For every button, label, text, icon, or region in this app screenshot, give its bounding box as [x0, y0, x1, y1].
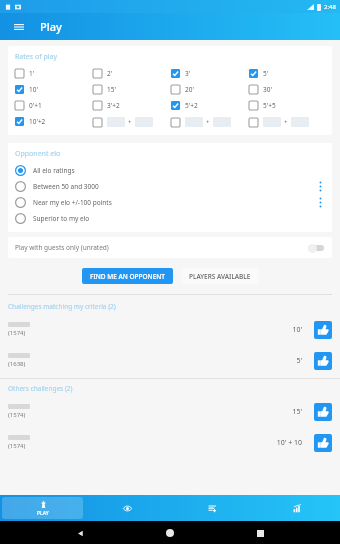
- button[interactable]: +: [249, 117, 327, 127]
- staticText: 5': [263, 69, 269, 78]
- staticText: PLAYERS AVAILABLE: [189, 272, 251, 281]
- button[interactable]: Accept challenge: [314, 434, 332, 452]
- staticText: All elo ratings: [33, 166, 327, 175]
- button[interactable]: 5'+5: [249, 99, 327, 112]
- staticText: 10' + 10: [252, 438, 302, 448]
- staticText: 1': [29, 69, 35, 78]
- staticText: 10': [29, 85, 38, 94]
- staticText: 30': [263, 85, 272, 94]
- button[interactable]: Play with guests only (unrated): [8, 237, 332, 258]
- button[interactable]: +: [93, 117, 171, 127]
- staticText: Challenges matching my criteria (2): [8, 302, 116, 311]
- button[interactable]: +: [171, 117, 249, 127]
- button[interactable]: 20': [171, 83, 249, 96]
- button[interactable]: 30': [249, 83, 327, 96]
- staticText: 0'+1: [29, 101, 42, 110]
- button[interactable]: Between 50 and 3000: [15, 178, 327, 194]
- button[interactable]: 15': [93, 83, 171, 96]
- button[interactable]: Statistics: [257, 497, 338, 519]
- button[interactable]: All elo ratings: [15, 162, 327, 178]
- staticText: Rates of play: [15, 52, 57, 62]
- staticText: Opponent elo: [15, 149, 61, 159]
- button[interactable]: (1574): [0, 314, 340, 345]
- staticText: 15': [107, 85, 116, 94]
- button[interactable]: 3': [171, 67, 249, 80]
- button[interactable]: PLAY: [2, 497, 83, 519]
- staticText: FIND ME AN OPPONENT: [90, 272, 165, 281]
- button[interactable]: 1': [15, 67, 93, 80]
- button[interactable]: (1574): [0, 427, 340, 458]
- staticText: Near my elo +/-100 points: [33, 198, 313, 207]
- staticText: +: [206, 118, 210, 126]
- staticText: 5'+2: [185, 101, 198, 110]
- staticText: 2:48: [324, 3, 336, 11]
- button[interactable]: 10'+2: [15, 115, 93, 128]
- staticText: (1574): [8, 442, 26, 450]
- button[interactable]: 5': [249, 67, 327, 80]
- staticText: Play with guests only (unrated): [15, 243, 308, 252]
- button[interactable]: More options: [313, 178, 327, 194]
- staticText: 10': [252, 325, 302, 335]
- button[interactable]: Recents: [250, 523, 270, 543]
- button[interactable]: FIND ME AN OPPONENT: [82, 268, 173, 284]
- staticText: PLAY: [37, 510, 49, 517]
- button[interactable]: Accept challenge: [314, 321, 332, 339]
- staticText: Play: [40, 19, 62, 34]
- button[interactable]: 5'+2: [171, 99, 249, 112]
- staticText: 15': [252, 407, 302, 417]
- staticText: 20': [185, 85, 194, 94]
- button[interactable]: More options: [313, 194, 327, 210]
- staticText: (1574): [8, 329, 26, 337]
- staticText: 10'+2: [29, 117, 46, 126]
- button[interactable]: Accept challenge: [314, 352, 332, 370]
- button[interactable]: Back: [70, 523, 90, 543]
- button[interactable]: 2': [93, 67, 171, 80]
- button[interactable]: 0'+1: [15, 99, 93, 112]
- staticText: Between 50 and 3000: [33, 182, 313, 191]
- button[interactable]: Tournaments: [172, 497, 253, 519]
- staticText: 5': [252, 356, 302, 366]
- staticText: +: [128, 118, 132, 126]
- button[interactable]: PLAYERS AVAILABLE: [181, 268, 259, 284]
- staticText: Others challenges (2): [8, 384, 73, 393]
- staticText: 2': [107, 69, 113, 78]
- button[interactable]: Watch: [87, 497, 168, 519]
- staticText: (1574): [8, 411, 26, 419]
- button[interactable]: Superior to my elo: [15, 210, 327, 226]
- button[interactable]: 3'+2: [93, 99, 171, 112]
- staticText: (1638): [8, 360, 26, 368]
- button[interactable]: Open menu: [10, 18, 28, 36]
- button[interactable]: (1574): [0, 396, 340, 427]
- staticText: 5'+5: [263, 101, 276, 110]
- staticText: Superior to my elo: [33, 214, 327, 223]
- button[interactable]: Near my elo +/-100 points: [15, 194, 327, 210]
- button[interactable]: 10': [15, 83, 93, 96]
- staticText: 3'+2: [107, 101, 120, 110]
- staticText: +: [284, 118, 288, 126]
- button[interactable]: Home: [160, 523, 180, 543]
- button[interactable]: (1638): [0, 345, 340, 376]
- button[interactable]: Accept challenge: [314, 403, 332, 421]
- staticText: 3': [185, 69, 191, 78]
